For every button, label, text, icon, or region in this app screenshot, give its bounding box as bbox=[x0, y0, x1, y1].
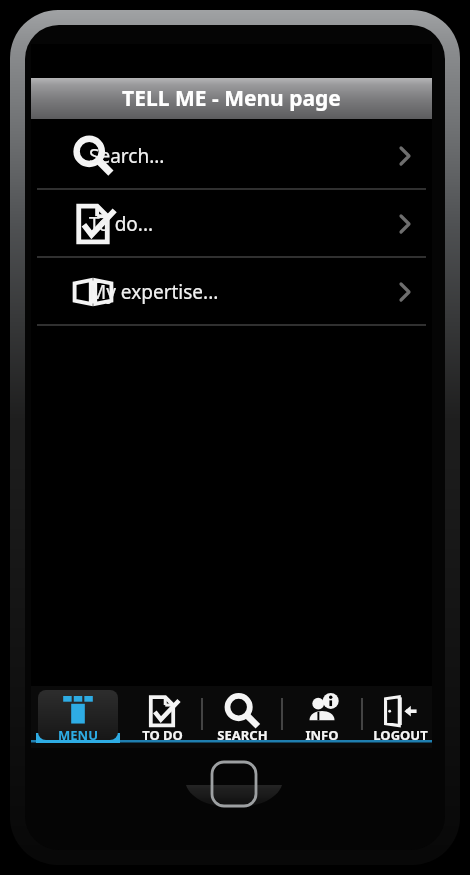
button[interactable]: LOGOUT bbox=[362, 688, 438, 746]
staticText: TELL ME - Menu page bbox=[122, 84, 341, 113]
button[interactable]: My expertise... bbox=[31, 258, 432, 326]
button[interactable]: SEARCH bbox=[202, 688, 282, 746]
staticText: To do... bbox=[89, 211, 154, 237]
staticText: INFO bbox=[305, 726, 339, 744]
staticText: LOGOUT bbox=[373, 726, 428, 744]
staticText: TO DO bbox=[142, 726, 183, 744]
button[interactable]: To do... bbox=[31, 190, 432, 258]
button[interactable]: Search... bbox=[31, 122, 432, 190]
staticText: Search... bbox=[89, 143, 165, 169]
button[interactable]: INFO bbox=[282, 688, 362, 746]
button[interactable]: MENU bbox=[36, 688, 120, 746]
staticText: My expertise... bbox=[89, 279, 219, 305]
staticText: SEARCH bbox=[217, 726, 268, 744]
button[interactable]: TO DO bbox=[122, 688, 202, 746]
staticText: MENU bbox=[58, 726, 98, 744]
